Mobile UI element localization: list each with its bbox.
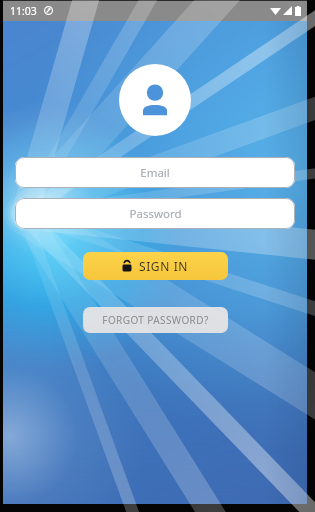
button[interactable]: Password <box>15 198 295 229</box>
button[interactable]: Email <box>15 157 295 188</box>
staticText: SIGN IN <box>139 258 189 274</box>
staticText: Password <box>129 206 182 222</box>
staticText: Email <box>140 165 170 181</box>
button[interactable]: FORGOT PASSWORD? <box>83 307 228 333</box>
staticText: FORGOT PASSWORD? <box>102 313 209 327</box>
button[interactable]: SIGN IN <box>83 252 228 280</box>
button[interactable]: Profile avatar <box>119 64 191 136</box>
staticText: 11:03 <box>10 4 37 18</box>
